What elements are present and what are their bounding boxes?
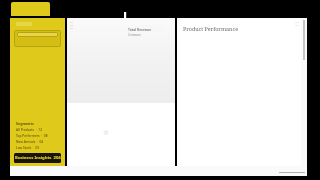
staticText: Total Revenue <box>128 27 152 32</box>
staticText: Compare <box>128 33 141 36</box>
staticText: Segments <box>16 121 34 126</box>
staticText: Low Stock · 03 <box>16 146 40 150</box>
button[interactable]: Total Revenue <box>126 25 164 36</box>
button[interactable]: Low Stock · 03 <box>16 146 44 150</box>
button[interactable]: All Products · 12 <box>16 128 55 132</box>
staticText: Product Performance <box>183 25 239 32</box>
button[interactable]: Segments <box>16 121 39 126</box>
button[interactable]: Product Performance <box>177 18 304 166</box>
button[interactable] <box>11 2 50 16</box>
staticText: Top Performers · 08 <box>16 134 48 138</box>
button[interactable]: Total Revenue <box>67 18 175 166</box>
button[interactable] <box>14 30 61 47</box>
staticText: All Products · 12 <box>16 128 42 132</box>
button[interactable]: New Arrivals · 04 <box>16 140 51 144</box>
button[interactable]: Business Insights 204 <box>14 153 61 163</box>
staticText: Business Insights 204 <box>15 155 61 161</box>
button[interactable]: Top Performers · 08 <box>16 134 57 138</box>
button[interactable]: Segments <box>10 18 65 166</box>
staticText: New Arrivals · 04 <box>16 140 44 144</box>
